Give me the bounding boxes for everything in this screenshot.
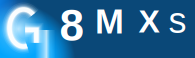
staticText: 8: [59, 1, 83, 50]
staticText: M: [95, 2, 124, 41]
staticText: X: [138, 4, 159, 39]
staticText: s: [168, 0, 186, 41]
